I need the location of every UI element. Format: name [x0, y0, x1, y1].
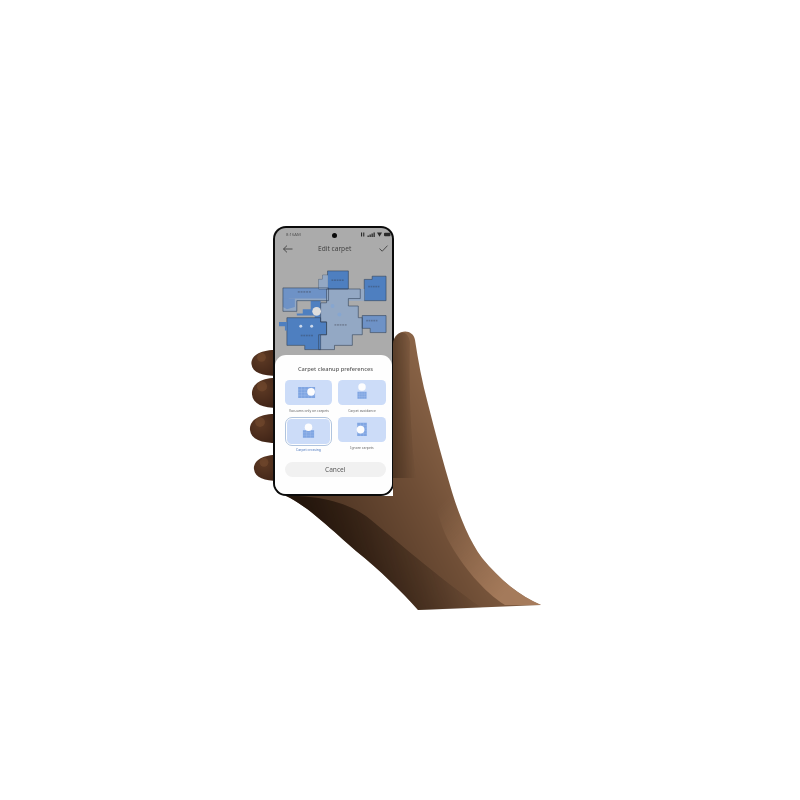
button[interactable]: Vacuums only on carpets	[285, 380, 332, 413]
staticText: 8:16AM	[286, 232, 301, 238]
button[interactable]: Carpet crossing	[285, 417, 332, 452]
button[interactable]: Back	[281, 242, 294, 255]
button[interactable]: Confirm	[377, 242, 390, 255]
staticText: Cancel	[325, 465, 346, 474]
staticText: Vacuums only on carpets	[289, 408, 329, 413]
staticText: Edit carpet	[318, 244, 352, 253]
staticText: Carpet avoidance	[348, 408, 376, 413]
button[interactable]: Cancel	[285, 462, 386, 477]
staticText: Ignore carpets	[350, 445, 374, 450]
button[interactable]: Ignore carpets	[338, 417, 386, 450]
staticText: Carpet cleanup preferences	[285, 365, 386, 373]
staticText: Carpet crossing	[296, 447, 321, 452]
button[interactable]: Carpet avoidance	[338, 380, 386, 413]
